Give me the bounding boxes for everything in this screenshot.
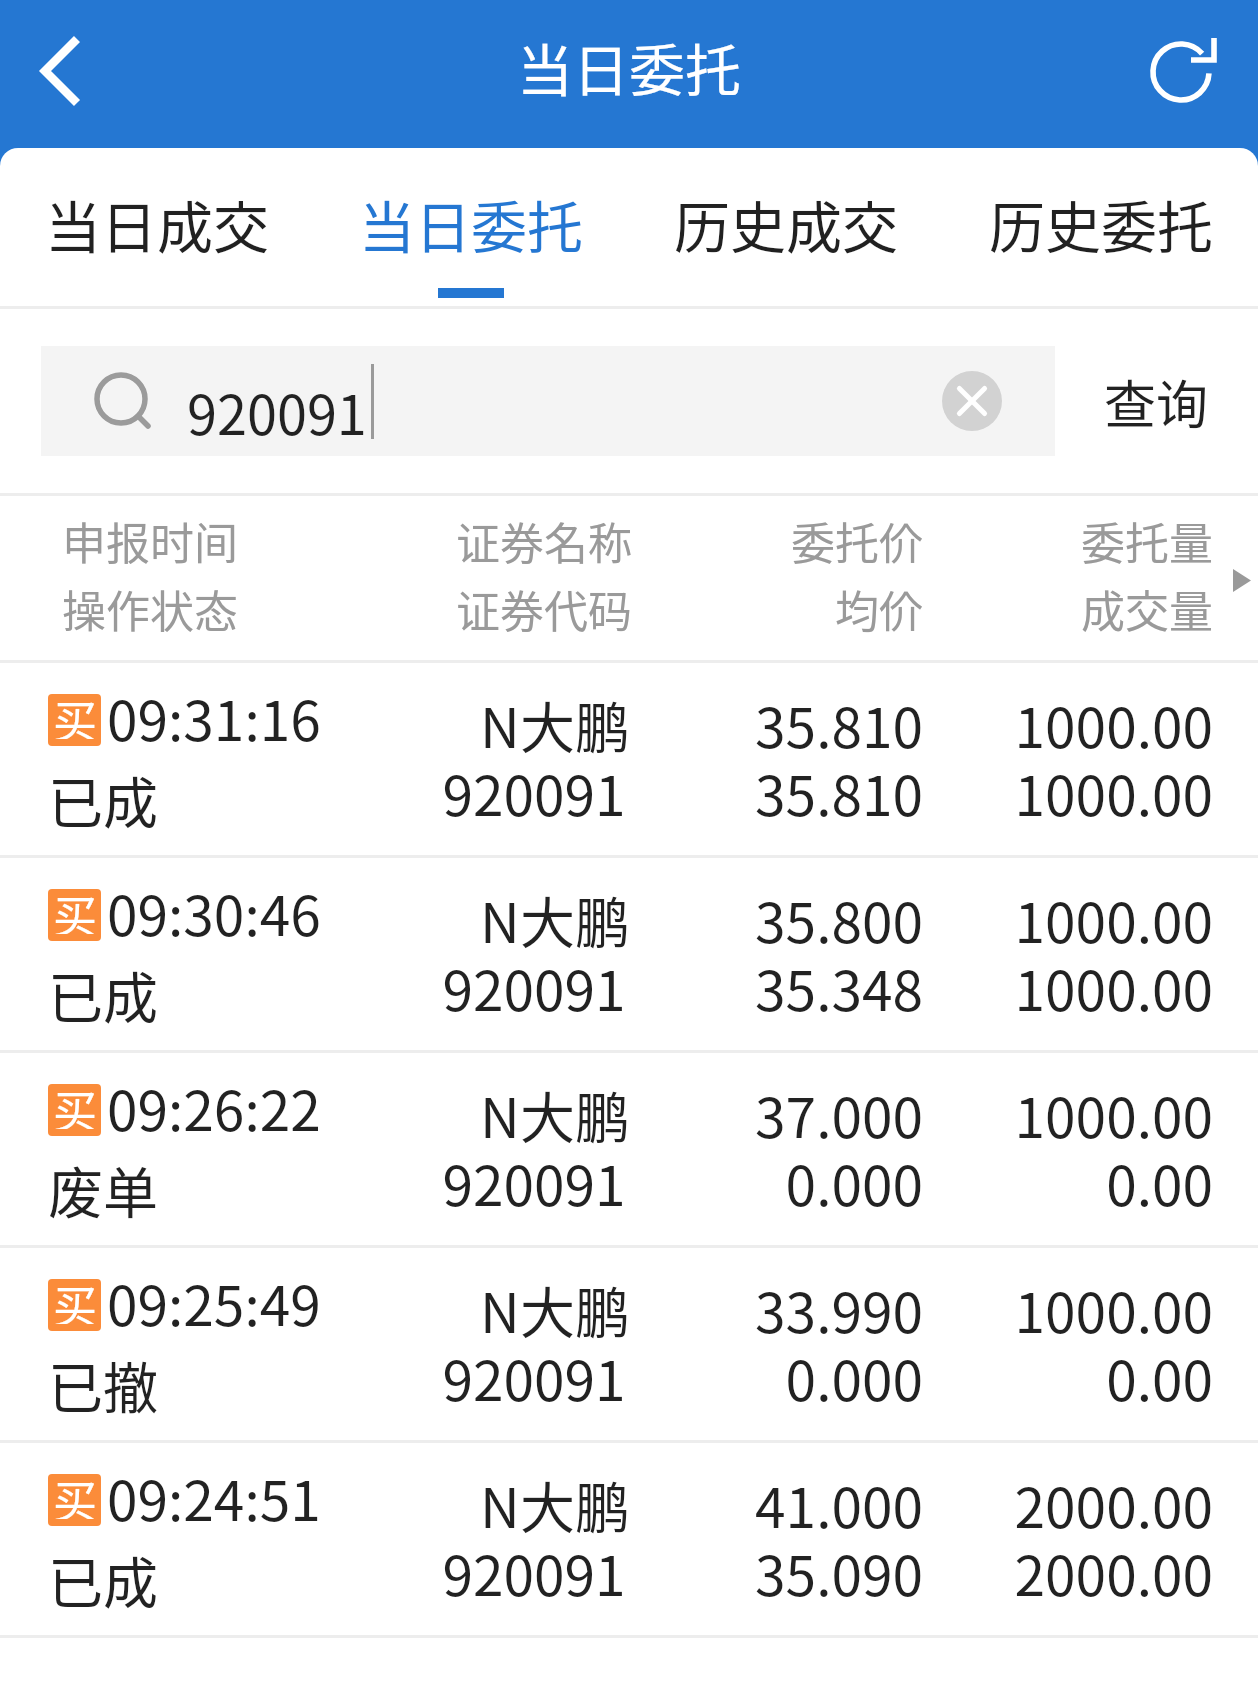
staticText: 33.990	[583, 1269, 923, 1349]
staticText: 09:25:49	[107, 1262, 321, 1342]
staticText: 1000.00	[873, 1269, 1213, 1349]
staticText: 买	[53, 1279, 97, 1324]
staticText: 1000.00	[873, 684, 1213, 764]
button[interactable]: Scroll columns right	[1215, 551, 1255, 609]
staticText: 当日委托	[359, 183, 583, 264]
staticText: 查询	[1104, 364, 1209, 439]
staticText: 已撤	[48, 1344, 159, 1424]
staticText: 买	[53, 1474, 97, 1519]
staticText: 35.810	[583, 684, 923, 764]
staticText: 2000.00	[873, 1464, 1213, 1544]
staticText: 35.090	[583, 1532, 923, 1612]
button[interactable]: 买	[0, 1443, 1258, 1635]
button[interactable]: 历史成交	[628, 148, 943, 306]
staticText: 历史成交	[674, 183, 898, 264]
staticText: 0.000	[583, 1142, 923, 1222]
staticText: 1000.00	[873, 879, 1213, 959]
staticText: 已成	[48, 759, 159, 839]
staticText: 0.00	[873, 1142, 1213, 1222]
staticText: 操作状态	[62, 577, 238, 641]
staticText: 已成	[48, 1539, 159, 1619]
staticText: 09:30:46	[107, 872, 321, 952]
staticText: 证券名称	[344, 509, 744, 573]
staticText: 09:24:51	[107, 1457, 321, 1537]
staticText: 09:31:16	[107, 677, 321, 757]
staticText: 买	[53, 889, 97, 934]
staticText: 历史委托	[989, 183, 1213, 264]
staticText: 09:26:22	[107, 1067, 321, 1147]
staticText: 买	[53, 694, 97, 739]
button[interactable]: 买	[0, 1248, 1258, 1440]
staticText: 920091	[334, 752, 734, 832]
staticText: 920091	[334, 1532, 734, 1612]
staticText: N大鹏	[355, 684, 755, 764]
staticText: 2000.00	[873, 1532, 1213, 1612]
staticText: 37.000	[583, 1074, 923, 1154]
button[interactable]: 920091	[41, 346, 1055, 456]
staticText: 废单	[48, 1149, 159, 1229]
staticText: 1000.00	[873, 1074, 1213, 1154]
button[interactable]: Back	[9, 21, 109, 121]
staticText: 920091	[334, 1337, 734, 1417]
staticText: 0.000	[583, 1337, 923, 1417]
staticText: 0.00	[873, 1337, 1213, 1417]
staticText: 920091	[334, 1142, 734, 1222]
staticText: 35.348	[583, 947, 923, 1027]
button[interactable]: Refresh	[1131, 22, 1231, 122]
staticText: 申报时间	[62, 509, 238, 573]
button[interactable]: 历史委托	[943, 148, 1258, 306]
staticText: 35.800	[583, 879, 923, 959]
staticText: 委托价	[583, 509, 923, 573]
button[interactable]: 买	[0, 858, 1258, 1050]
staticText: 1000.00	[873, 947, 1213, 1027]
staticText: 920091	[187, 372, 367, 450]
staticText: 35.810	[583, 752, 923, 832]
staticText: 1000.00	[873, 752, 1213, 832]
staticText: 证券代码	[344, 577, 744, 641]
staticText: 920091	[334, 947, 734, 1027]
button[interactable]: 当日委托	[314, 148, 628, 306]
staticText: 当日成交	[45, 183, 269, 264]
staticText: N大鹏	[355, 1074, 755, 1154]
staticText: 已成	[48, 954, 159, 1034]
button[interactable]: 当日成交	[0, 148, 314, 306]
staticText: 41.000	[583, 1464, 923, 1544]
staticText: N大鹏	[355, 1269, 755, 1349]
staticText: 买	[53, 1084, 97, 1129]
staticText: 成交量	[873, 577, 1213, 641]
button[interactable]: 查询	[1055, 346, 1258, 456]
button[interactable]: Clear text	[924, 353, 1020, 449]
button[interactable]: 买	[0, 663, 1258, 855]
staticText: N大鹏	[355, 1464, 755, 1544]
staticText: 当日委托	[517, 26, 741, 107]
staticText: 委托量	[873, 509, 1213, 573]
staticText: 均价	[583, 577, 923, 641]
button[interactable]: 买	[0, 1053, 1258, 1245]
staticText: N大鹏	[355, 879, 755, 959]
